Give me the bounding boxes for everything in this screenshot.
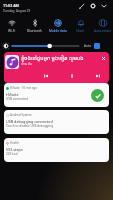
staticText: USB debugging connected xyxy=(6,119,53,124)
staticText: USB connected xyxy=(6,97,28,101)
staticText: Wi-Fi xyxy=(8,29,16,33)
button[interactable]: Silent xyxy=(69,19,92,31)
staticText: Android System xyxy=(10,113,32,117)
staticText: Silent xyxy=(76,29,85,33)
button[interactable]: Settings xyxy=(87,0,98,11)
staticText: Health xyxy=(10,141,19,145)
button[interactable]: Wi-Fi xyxy=(0,19,23,31)
staticText: Auto-rotate xyxy=(94,29,112,33)
staticText: Mobile data xyxy=(49,29,67,33)
staticText: 229 kcal xyxy=(6,152,18,156)
staticText: 592 steps xyxy=(6,147,23,152)
staticText: Bluetooth xyxy=(27,29,42,33)
button[interactable]: Next xyxy=(92,70,104,82)
button[interactable]: Auto-rotate xyxy=(92,19,113,31)
button[interactable]: Previous xyxy=(40,70,52,82)
button[interactable]: Close xyxy=(98,53,109,64)
button[interactable]: ខ្ញុំចង់ទៅជួបអ្នក ម្ដងទៀត សូមបង xyxy=(4,52,109,83)
button[interactable]: HiSuite · 16 min ago xyxy=(4,83,109,107)
button[interactable]: Pause xyxy=(66,70,78,82)
staticText: Touch to disable USB debugging xyxy=(6,124,54,128)
button[interactable]: Edit xyxy=(76,0,87,11)
button[interactable]: Mobile data xyxy=(46,19,69,31)
button[interactable]: Android System xyxy=(4,110,109,134)
button[interactable]: Expand xyxy=(98,0,109,11)
staticText: HiSuite xyxy=(6,92,19,97)
button[interactable]: Brightness xyxy=(11,42,80,50)
button[interactable]: Bluetooth xyxy=(23,19,46,31)
staticText: 11:03 AM xyxy=(3,3,19,8)
staticText: Auto xyxy=(84,44,92,48)
button[interactable]: Health xyxy=(4,138,109,162)
button[interactable]: Auto brightness xyxy=(94,43,100,49)
staticText: ពេចរ ពីរា xyxy=(21,61,33,66)
staticText: Tuesday, August 29 xyxy=(3,9,31,13)
staticText: HiSuite · 16 min ago xyxy=(10,86,38,90)
staticText: ខ្ញុំចង់ទៅជួបអ្នក ម្ដងទៀត សូមបង xyxy=(21,54,84,61)
